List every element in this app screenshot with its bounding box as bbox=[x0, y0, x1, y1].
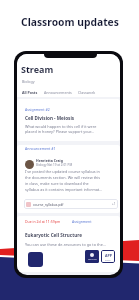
staticText: What would happen to this cell if it wer… bbox=[25, 124, 97, 134]
staticText: Assignment #2 bbox=[25, 107, 50, 112]
staticText: +1 bbox=[112, 202, 116, 206]
staticText: Store bbox=[105, 259, 111, 262]
staticText: Stream bbox=[21, 63, 54, 75]
staticText: Classroom updates bbox=[21, 15, 119, 29]
staticText: Announcement #1 bbox=[25, 146, 56, 151]
staticText: Eukaryotic Cell Structure bbox=[25, 232, 82, 238]
staticText: Get it on bbox=[88, 258, 97, 261]
other: Get it on Google Play bbox=[85, 250, 99, 263]
staticText: Henrietta Craig bbox=[36, 158, 63, 163]
staticText: Classwork bbox=[78, 90, 96, 95]
staticText: Due in 2d at 11:59pm bbox=[25, 219, 61, 224]
staticText: Assignment bbox=[72, 219, 92, 224]
staticText: Cell Division - Meiosis bbox=[25, 115, 75, 121]
staticText: Biology Nat 19 at 2:01 PM bbox=[36, 163, 73, 167]
other: Download on the App Store bbox=[101, 250, 115, 263]
staticText: APP bbox=[105, 253, 112, 258]
staticText: All Posts bbox=[22, 90, 38, 95]
staticText: You can use these de-resources to go to … bbox=[25, 242, 106, 247]
staticText: I've posted the updated course syllabus … bbox=[25, 169, 103, 192]
staticText: course_syllabus.pdf bbox=[33, 202, 64, 206]
staticText: Announcements bbox=[44, 90, 72, 95]
staticText: Biology bbox=[22, 79, 35, 84]
